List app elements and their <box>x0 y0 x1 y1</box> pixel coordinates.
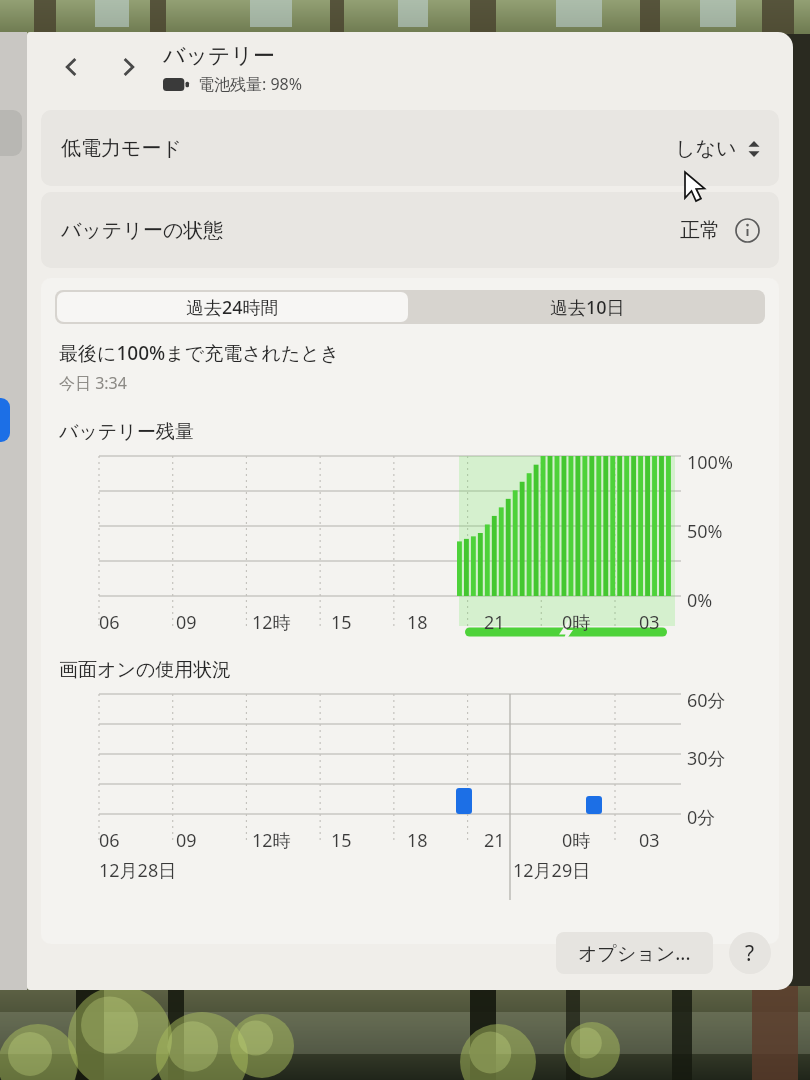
staticText: 12月29日 <box>513 858 591 883</box>
staticText: バッテリー残量 <box>59 420 194 444</box>
staticText: 低電力モード <box>61 136 182 161</box>
button[interactable]: 低電力モード <box>41 110 779 186</box>
staticText: 電池残量: 98% <box>198 73 303 95</box>
staticText: 18 <box>407 610 428 635</box>
staticText: 30分 <box>687 746 726 771</box>
staticText: 60分 <box>687 688 726 713</box>
staticText: 15 <box>331 610 352 635</box>
staticText: 100% <box>687 450 733 475</box>
staticText: 03 <box>639 828 660 853</box>
staticText: ? <box>745 939 755 968</box>
button[interactable]: 過去24時間 <box>57 292 408 322</box>
staticText: 12月28日 <box>99 858 177 883</box>
staticText: 12時 <box>252 610 291 635</box>
staticText: 0% <box>687 588 713 613</box>
staticText: 09 <box>176 828 197 853</box>
staticText: 15 <box>331 828 352 853</box>
staticText: オプション... <box>578 940 691 966</box>
staticText: しない <box>675 136 737 161</box>
button[interactable]: 情報 <box>733 216 761 244</box>
staticText: 0時 <box>562 828 591 853</box>
button[interactable]: 戻る <box>51 46 93 88</box>
staticText: 最後に100%まで充電されたとき <box>59 340 340 366</box>
staticText: 03 <box>639 610 660 635</box>
staticText: 12時 <box>252 828 291 853</box>
button[interactable]: 進む <box>107 46 149 88</box>
staticText: 06 <box>99 828 120 853</box>
staticText: 06 <box>99 610 120 635</box>
button[interactable]: 過去10日 <box>410 290 765 324</box>
button[interactable]: ヘルプ <box>729 932 771 974</box>
staticText: 今日 3:34 <box>59 372 127 394</box>
staticText: 過去10日 <box>550 295 625 320</box>
staticText: 21 <box>484 610 505 635</box>
staticText: 0時 <box>562 610 591 635</box>
staticText: バッテリーの状態 <box>61 218 224 243</box>
staticText: バッテリー <box>163 42 276 70</box>
button[interactable]: しない <box>675 136 761 161</box>
button[interactable]: バッテリーの状態 <box>41 192 779 268</box>
button[interactable]: オプション... <box>556 932 713 974</box>
staticText: 21 <box>484 828 505 853</box>
staticText: 画面オンの使用状況 <box>59 658 232 682</box>
staticText: 09 <box>176 610 197 635</box>
staticText: 50% <box>687 519 723 544</box>
staticText: 0分 <box>687 805 716 830</box>
staticText: 正常 <box>680 218 720 243</box>
staticText: 18 <box>407 828 428 853</box>
staticText: 過去24時間 <box>186 295 279 320</box>
